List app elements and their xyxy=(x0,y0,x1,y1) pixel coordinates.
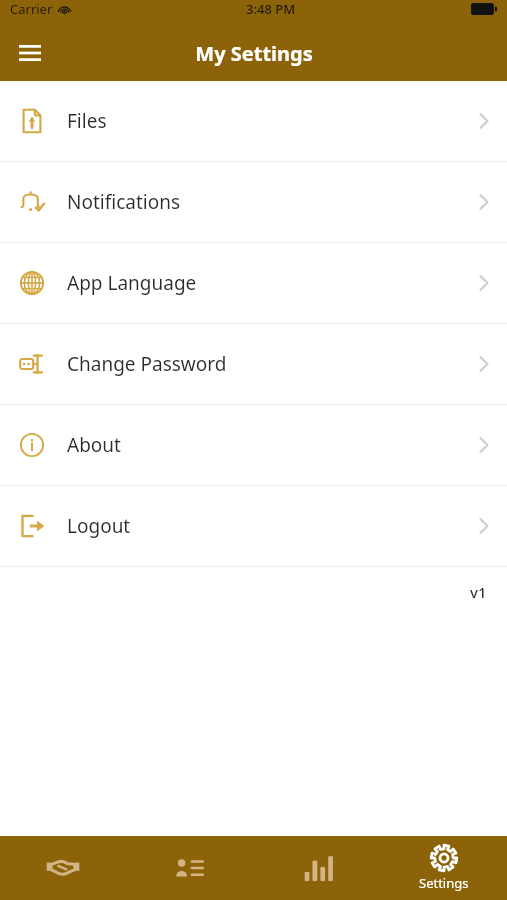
staticText: Carrier xyxy=(10,0,53,18)
button[interactable]: Logout xyxy=(0,486,507,566)
staticText: About xyxy=(67,432,121,458)
staticText: Settings xyxy=(419,874,469,892)
staticText: v1 xyxy=(470,582,487,602)
staticText: Files xyxy=(67,108,107,134)
button[interactable]: Deals xyxy=(0,836,126,900)
button[interactable]: Change Password xyxy=(0,324,507,404)
staticText: My Settings xyxy=(195,40,313,67)
button[interactable]: Open navigation menu xyxy=(8,31,52,75)
staticText: 3:48 PM xyxy=(246,0,296,18)
staticText: Change Password xyxy=(67,351,227,377)
button[interactable]: App Language xyxy=(0,243,507,323)
staticText: Logout xyxy=(67,513,131,539)
button[interactable]: About xyxy=(0,405,507,485)
button[interactable]: Notifications xyxy=(0,162,507,242)
button[interactable]: Files xyxy=(0,81,507,161)
staticText: App Language xyxy=(67,270,197,296)
button[interactable]: Reports xyxy=(253,836,380,900)
button[interactable]: Settings xyxy=(380,836,507,900)
button[interactable]: Contacts xyxy=(126,836,253,900)
staticText: Notifications xyxy=(67,189,181,215)
